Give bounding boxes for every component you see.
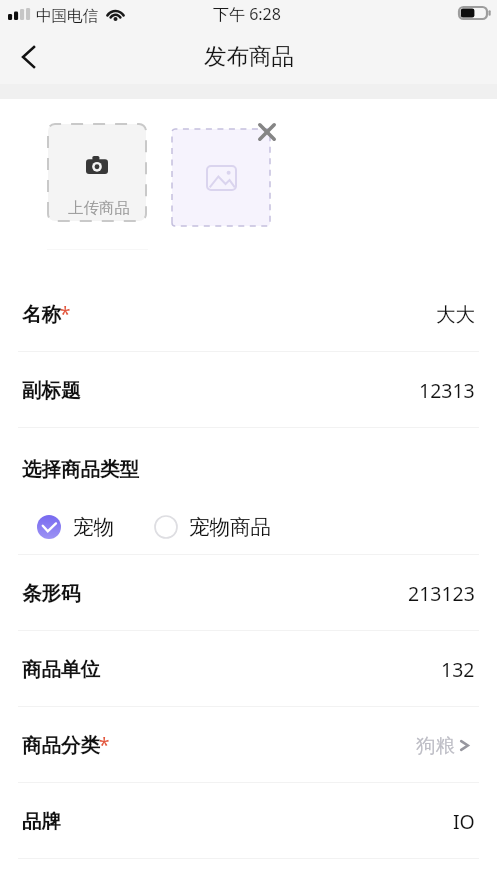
button[interactable]: 条形码	[0, 555, 497, 631]
staticText: 213123	[408, 580, 475, 607]
button[interactable]: 名称	[0, 276, 497, 352]
button[interactable]: 商品单位	[0, 631, 497, 707]
staticText: 商品分类	[22, 733, 100, 758]
staticText: 12313	[419, 377, 475, 404]
button[interactable]: Back	[3, 33, 51, 81]
staticText: 狗粮	[416, 733, 455, 758]
staticText: 上传商品	[68, 198, 130, 218]
button[interactable]: Product image	[172, 129, 270, 226]
staticText: IO	[453, 808, 475, 835]
staticText: 宠物商品	[189, 514, 271, 540]
staticText: 商品单位	[22, 657, 100, 682]
button[interactable]: Upload product photo	[48, 124, 146, 221]
staticText: 选择商品类型	[22, 457, 139, 482]
staticText: 中国电信	[36, 6, 98, 26]
staticText: 下午 6:28	[213, 3, 281, 25]
staticText: *	[60, 301, 71, 323]
staticText: 发布商品	[204, 42, 294, 70]
button[interactable]: 副标题	[0, 352, 497, 428]
staticText: 132	[441, 656, 475, 683]
button[interactable]: 宠物商品	[154, 514, 271, 540]
staticText: *	[99, 732, 110, 754]
button[interactable]: Remove image	[253, 118, 281, 146]
staticText: 条形码	[22, 581, 81, 606]
staticText: 品牌	[22, 809, 61, 834]
button[interactable]: 宠物	[37, 514, 114, 540]
button[interactable]: 商品分类	[0, 707, 497, 783]
staticText: 宠物	[73, 514, 114, 540]
staticText: 名称	[22, 302, 61, 327]
button[interactable]: 品牌	[0, 783, 497, 859]
staticText: 大大	[436, 302, 475, 327]
staticText: 副标题	[22, 378, 81, 403]
